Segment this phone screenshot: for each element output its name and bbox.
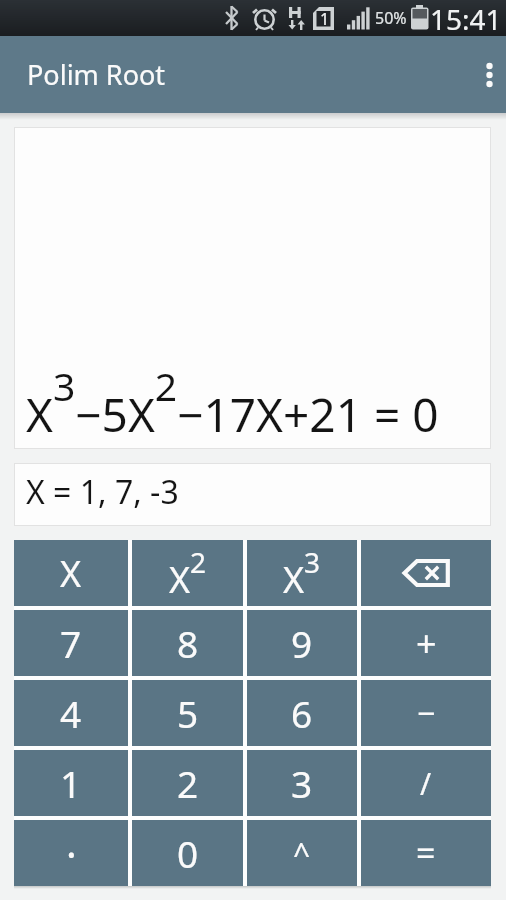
staticText: X = 1, 7, -3 <box>26 470 179 514</box>
staticText: 4 <box>60 688 82 738</box>
button[interactable]: 6 <box>247 680 357 746</box>
staticText: 1 <box>320 8 330 30</box>
staticText: 50% <box>375 7 407 29</box>
button[interactable]: X = 1, 7, -3 <box>14 463 491 526</box>
staticText: X3−5X2−17X+21 = 0 <box>26 359 439 445</box>
staticText: / <box>420 763 432 804</box>
button[interactable]: 9 <box>247 610 357 676</box>
button[interactable]: X3−5X2−17X+21 = 0 <box>14 127 491 449</box>
staticText: 1 <box>60 758 82 808</box>
staticText: 3 <box>291 758 313 808</box>
staticText: 9 <box>291 618 313 668</box>
button[interactable]: 5 <box>132 680 243 746</box>
button[interactable]: X <box>14 540 128 606</box>
button[interactable]: + <box>361 610 491 676</box>
button[interactable]: 8 <box>132 610 243 676</box>
staticText: ^ <box>293 833 311 874</box>
button[interactable]: 3 <box>247 750 357 816</box>
button[interactable]: 0 <box>132 820 243 886</box>
staticText: 0 <box>177 828 199 878</box>
button[interactable]: 2 <box>132 750 243 816</box>
staticText: 5 <box>177 688 199 738</box>
staticText: − <box>417 691 436 735</box>
staticText: = <box>416 830 436 876</box>
staticText: X <box>60 549 82 598</box>
staticText: 7 <box>60 618 82 668</box>
button[interactable]: X2 <box>132 540 243 606</box>
staticText: 15:41 <box>430 0 502 36</box>
staticText: X2 <box>169 543 207 604</box>
button[interactable] <box>462 36 506 113</box>
button[interactable]: ^ <box>247 820 357 886</box>
staticText: + <box>416 619 437 668</box>
staticText: Polim Root <box>27 56 166 93</box>
button[interactable]: X3 <box>247 540 357 606</box>
button[interactable]: 7 <box>14 610 128 676</box>
staticText: 6 <box>291 688 313 738</box>
button[interactable]: 4 <box>14 680 128 746</box>
staticText: 2 <box>177 758 199 808</box>
staticText: 8 <box>177 618 199 668</box>
staticText: · <box>66 826 77 880</box>
button[interactable] <box>361 540 491 606</box>
button[interactable]: − <box>361 680 491 746</box>
button[interactable]: 1 <box>14 750 128 816</box>
staticText: X3 <box>283 543 321 604</box>
button[interactable]: / <box>361 750 491 816</box>
button[interactable]: = <box>361 820 491 886</box>
button[interactable]: · <box>14 820 128 886</box>
